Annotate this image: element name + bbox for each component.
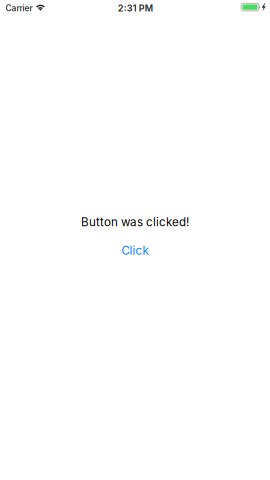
button[interactable]: Click [113, 240, 156, 261]
staticText: Click [121, 243, 148, 257]
staticText: Carrier [5, 3, 32, 13]
staticText: Button was clicked! [81, 215, 189, 229]
staticText: 2:31 PM [118, 3, 153, 14]
